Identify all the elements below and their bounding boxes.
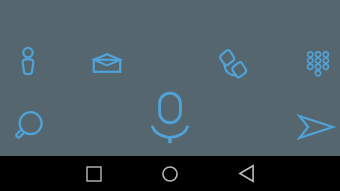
button[interactable]: Recents (75, 156, 113, 191)
button[interactable]: Dialpad (298, 43, 338, 83)
button[interactable]: Contacts (8, 42, 48, 82)
button[interactable]: Voice input (144, 90, 196, 146)
button[interactable]: Search (8, 107, 48, 147)
button[interactable]: Back (227, 156, 265, 191)
button[interactable]: Send (293, 107, 337, 147)
button[interactable]: Call (212, 43, 252, 83)
button[interactable]: Home (151, 156, 189, 191)
button[interactable]: Messages (87, 43, 127, 83)
